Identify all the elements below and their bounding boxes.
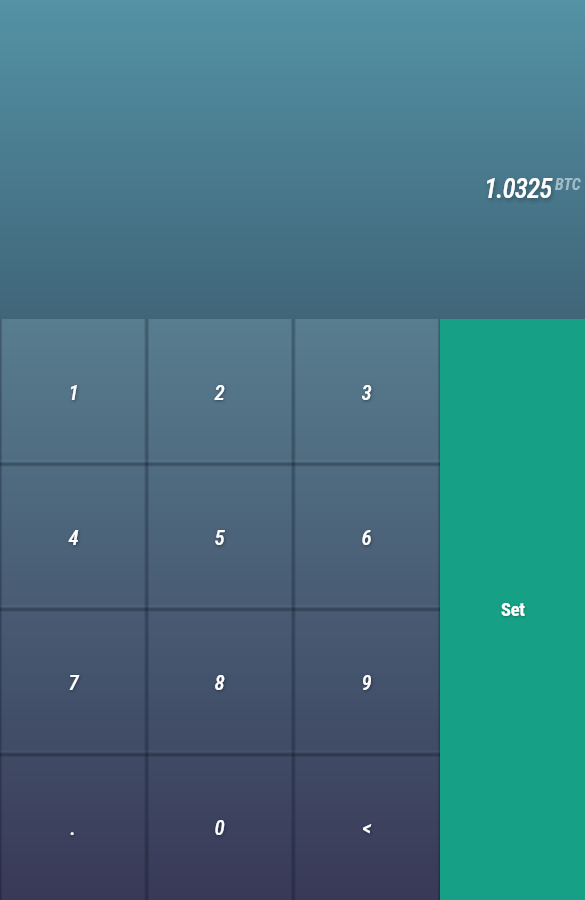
button[interactable]: Backspace: [293, 755, 440, 900]
button[interactable]: Set: [440, 319, 585, 900]
button[interactable]: Digit 0: [146, 755, 293, 900]
button[interactable]: Digit 7: [0, 610, 146, 755]
button[interactable]: Digit 8: [146, 610, 293, 755]
button[interactable]: Digit 4: [0, 465, 146, 610]
button[interactable]: Digit 1: [0, 319, 146, 465]
staticText: 7: [68, 671, 79, 696]
staticText: 9: [361, 671, 372, 696]
staticText: 4: [68, 526, 79, 551]
staticText: 0: [214, 816, 225, 841]
staticText: 1.0325: [484, 173, 552, 205]
staticText: 8: [214, 671, 225, 696]
staticText: BTC: [555, 175, 581, 194]
button[interactable]: Digit 5: [146, 465, 293, 610]
staticText: <: [362, 816, 372, 841]
button[interactable]: Digit 2: [146, 319, 293, 465]
staticText: 5: [214, 526, 225, 551]
button[interactable]: Decimal point: [0, 755, 146, 900]
staticText: .: [70, 816, 76, 841]
staticText: 2: [214, 381, 225, 406]
button[interactable]: Digit 6: [293, 465, 440, 610]
button[interactable]: Digit 3: [293, 319, 440, 465]
staticText: 3: [361, 381, 372, 406]
button[interactable]: Digit 9: [293, 610, 440, 755]
staticText: Set: [501, 599, 525, 621]
staticText: 1: [68, 381, 79, 406]
staticText: 6: [361, 526, 372, 551]
